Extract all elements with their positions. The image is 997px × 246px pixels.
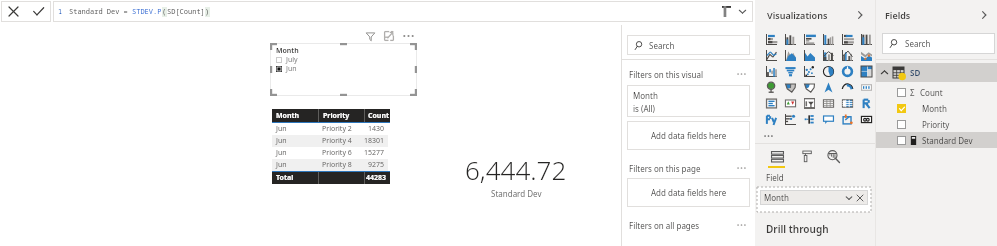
staticText: 44283	[366, 173, 387, 183]
button[interactable]: Visual type	[800, 31, 819, 47]
button[interactable]: Visual type	[800, 63, 819, 79]
staticText: Search	[905, 38, 931, 49]
staticText: Priority 2	[322, 124, 352, 134]
staticText: Priority 4	[322, 136, 352, 146]
button[interactable]: Visual type	[819, 63, 838, 79]
button[interactable]: Format	[719, 4, 734, 19]
button[interactable]: More options	[402, 30, 414, 42]
staticText: Filters on this visual	[629, 69, 704, 80]
button[interactable]: Visual type	[800, 47, 819, 63]
button[interactable]: SD	[876, 63, 997, 82]
button[interactable]: Visual type	[857, 31, 876, 47]
staticText: 6,444.72	[465, 152, 567, 187]
button[interactable]: Format	[798, 148, 814, 164]
button[interactable]: Jun	[272, 147, 388, 159]
button[interactable]: Visual type	[857, 63, 876, 79]
button[interactable]: Visual type	[838, 111, 857, 127]
staticText: 1	[58, 7, 63, 17]
staticText: Standard Dev =	[69, 7, 132, 17]
button[interactable]: More visual types	[761, 129, 775, 143]
staticText: Σ	[910, 87, 915, 98]
button[interactable]: Visual type	[838, 95, 857, 111]
staticText: July	[286, 55, 298, 65]
button[interactable]: Visual type	[819, 31, 838, 47]
button[interactable]: Visual type	[781, 79, 800, 95]
button[interactable]: Visual type	[762, 95, 781, 111]
staticText: SD[Count]	[167, 7, 205, 17]
button[interactable]: Visual type	[819, 79, 838, 95]
button[interactable]: Visual type	[819, 111, 838, 127]
button[interactable]: Standard Dev	[876, 132, 997, 148]
button[interactable]: Visual type	[781, 95, 800, 111]
staticText: (	[162, 7, 167, 17]
staticText: 15277	[364, 148, 385, 158]
button[interactable]: July	[276, 55, 298, 65]
staticText: Jun	[276, 148, 287, 158]
staticText: Jun	[276, 160, 287, 170]
staticText: Fields	[885, 9, 911, 21]
button[interactable]: Expand Fields	[977, 8, 991, 22]
button[interactable]: Visual type	[781, 47, 800, 63]
staticText: Priority 6	[322, 148, 352, 158]
button[interactable]: Visual type	[857, 111, 876, 127]
button[interactable]: Jun	[272, 135, 388, 147]
button[interactable]: Search	[882, 33, 995, 54]
button[interactable]: Add data fields here	[627, 178, 750, 207]
button[interactable]: Analytics	[825, 148, 841, 164]
button[interactable]: Focus mode	[383, 30, 395, 42]
button[interactable]: Month	[876, 100, 997, 116]
button[interactable]: Visual type	[762, 63, 781, 79]
staticText: 18301	[364, 136, 385, 146]
button[interactable]: Visual type	[781, 31, 800, 47]
button[interactable]: Search	[627, 35, 750, 55]
button[interactable]: Priority	[876, 116, 997, 132]
button[interactable]: Visual type	[838, 63, 857, 79]
button[interactable]: Visual type	[838, 31, 857, 47]
button[interactable]: Jun	[272, 159, 388, 171]
button[interactable]: Visual type	[762, 111, 781, 127]
staticText: Jun	[276, 136, 287, 146]
button[interactable]: Jun	[272, 123, 388, 135]
button[interactable]: Visual type	[800, 111, 819, 127]
button[interactable]: Σ	[876, 84, 997, 100]
button[interactable]: Visual type	[762, 31, 781, 47]
staticText: Add data fields here	[651, 130, 727, 141]
staticText: is (All)	[633, 103, 656, 114]
button[interactable]: Visual type	[762, 79, 781, 95]
staticText: 9275	[368, 160, 385, 170]
staticText: Month	[764, 192, 789, 203]
button[interactable]: Visual type	[857, 79, 876, 95]
staticText: Count	[920, 87, 943, 98]
button[interactable]: Visual type	[781, 63, 800, 79]
button[interactable]: Filter options	[735, 219, 747, 231]
button[interactable]: Expand formula bar	[735, 4, 750, 19]
button[interactable]: Visual type	[800, 95, 819, 111]
button[interactable]: Fields	[769, 148, 785, 164]
button[interactable]: Filter options	[735, 68, 747, 80]
staticText: Month	[276, 46, 299, 56]
button[interactable]: Month	[627, 85, 750, 117]
button[interactable]: Visual type	[819, 95, 838, 111]
button[interactable]: Cancel	[1, 1, 26, 22]
button[interactable]: Add data fields here	[627, 121, 750, 150]
button[interactable]: Visual type	[857, 47, 876, 63]
button[interactable]: Month	[760, 190, 868, 205]
button[interactable]: Visual type	[800, 79, 819, 95]
staticText: Priority	[922, 119, 950, 130]
button[interactable]: Visual type	[819, 47, 838, 63]
button[interactable]: Visual type	[857, 95, 876, 111]
staticText: Standard Dev	[491, 188, 542, 199]
button[interactable]: Filters	[364, 30, 376, 42]
staticText: Filters on this page	[629, 163, 701, 174]
staticText: )	[205, 7, 210, 17]
button[interactable]: Filter options	[735, 162, 747, 174]
button[interactable]: Commit	[26, 1, 51, 22]
button[interactable]: Visual type	[762, 47, 781, 63]
button[interactable]: Visual type	[838, 47, 857, 63]
staticText: Field	[766, 172, 784, 183]
staticText: Month	[922, 103, 947, 114]
button[interactable]: Expand Visualizations	[853, 8, 867, 22]
button[interactable]: Visual type	[781, 111, 800, 127]
button[interactable]: Jun	[276, 64, 297, 74]
button[interactable]: Visual type	[838, 79, 857, 95]
